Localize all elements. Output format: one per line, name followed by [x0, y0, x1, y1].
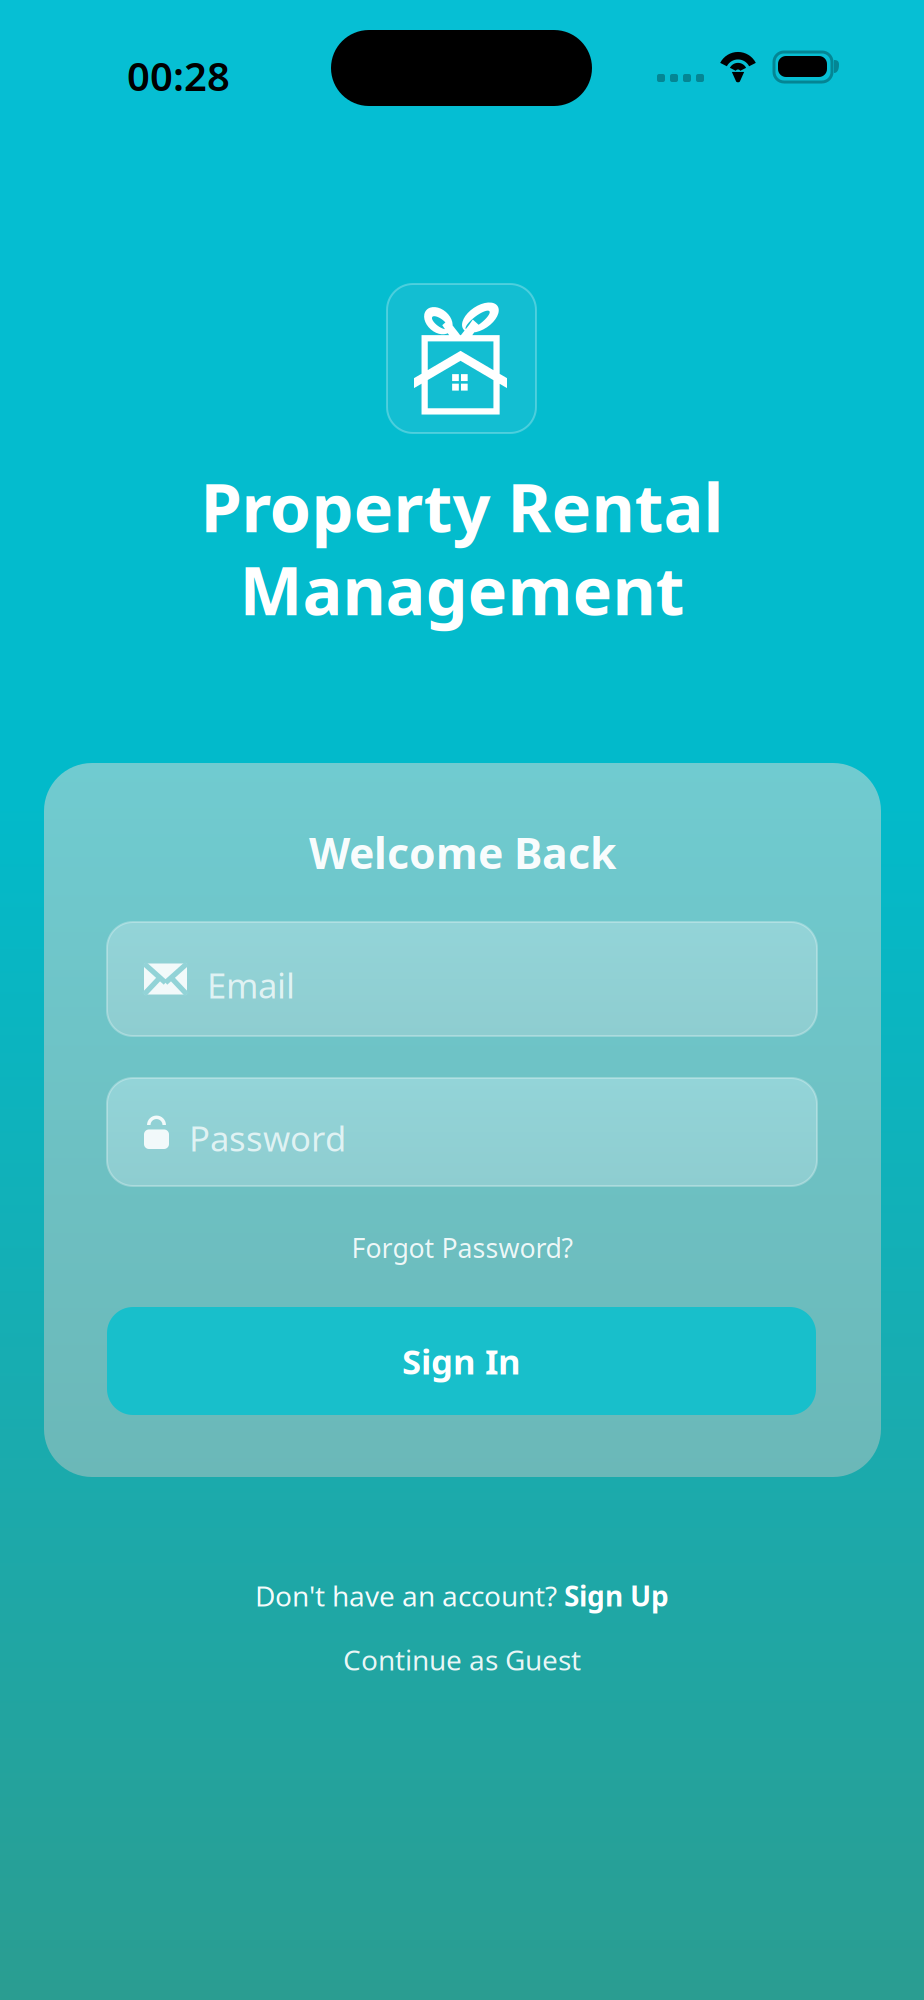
- staticText: Property Rental: [200, 462, 723, 550]
- button[interactable]: Sign In: [107, 1307, 816, 1415]
- staticText: Welcome Back: [309, 824, 616, 881]
- button[interactable]: Continue as Guest: [329, 1631, 595, 1688]
- staticText: Continue as Guest: [343, 1641, 581, 1678]
- staticText: Sign Up: [564, 1577, 669, 1614]
- staticText: Email: [207, 962, 295, 1008]
- staticText: Don't have an account?: [255, 1577, 564, 1614]
- staticText: 00:28: [127, 49, 230, 102]
- staticText: Forgot Password?: [351, 1230, 573, 1265]
- button[interactable]: Don't have an account?: [241, 1567, 683, 1624]
- button[interactable]: Forgot Password?: [339, 1222, 585, 1273]
- staticText: Management: [239, 545, 684, 633]
- staticText: Sign In: [402, 1338, 521, 1384]
- staticText: Password: [189, 1115, 346, 1161]
